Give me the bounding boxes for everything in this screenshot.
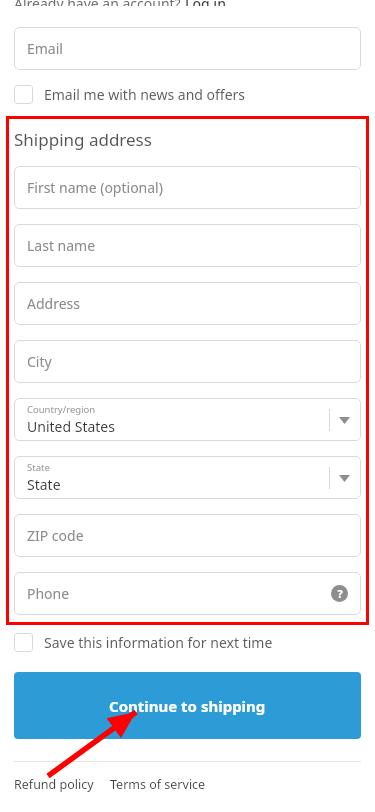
button[interactable]: Phone (14, 572, 361, 615)
staticText: Already have an account? (14, 0, 185, 6)
staticText: Address (27, 294, 80, 313)
staticText: Phone (27, 584, 70, 603)
staticText: Terms of service (110, 776, 206, 793)
button[interactable]: Terms of service (110, 776, 206, 793)
button[interactable]: ZIP code (14, 514, 361, 557)
button[interactable]: Country/region (14, 398, 361, 441)
staticText: State (27, 461, 50, 474)
staticText: Country/region (27, 403, 96, 416)
staticText: Last name (27, 236, 96, 255)
button[interactable]: Email (14, 27, 361, 70)
button[interactable]: Phone help (331, 585, 348, 602)
button[interactable]: Last name (14, 224, 361, 267)
staticText: United States (27, 417, 115, 436)
staticText: City (27, 352, 52, 371)
button[interactable]: First name (optional) (14, 166, 361, 209)
button[interactable]: State (14, 456, 361, 499)
staticText: ? (337, 586, 343, 601)
button[interactable]: Save this information for next time (14, 631, 361, 654)
staticText: First name (optional) (27, 178, 163, 197)
staticText: Log in (185, 0, 226, 6)
staticText: Refund policy (14, 776, 94, 793)
staticText: Save this information for next time (44, 633, 273, 652)
staticText: ZIP code (27, 526, 84, 545)
button[interactable]: Email me with news and offers (14, 83, 361, 106)
staticText: Email me with news and offers (44, 85, 246, 104)
button[interactable]: Address (14, 282, 361, 325)
staticText: State (27, 475, 61, 494)
staticText: Continue to shipping (109, 696, 266, 716)
button[interactable]: Continue to shipping (14, 672, 361, 739)
staticText: Email (27, 39, 63, 58)
staticText: Shipping address (14, 128, 152, 151)
button[interactable]: Refund policy (14, 776, 94, 793)
button[interactable]: Log in (185, 0, 226, 6)
button[interactable]: City (14, 340, 361, 383)
